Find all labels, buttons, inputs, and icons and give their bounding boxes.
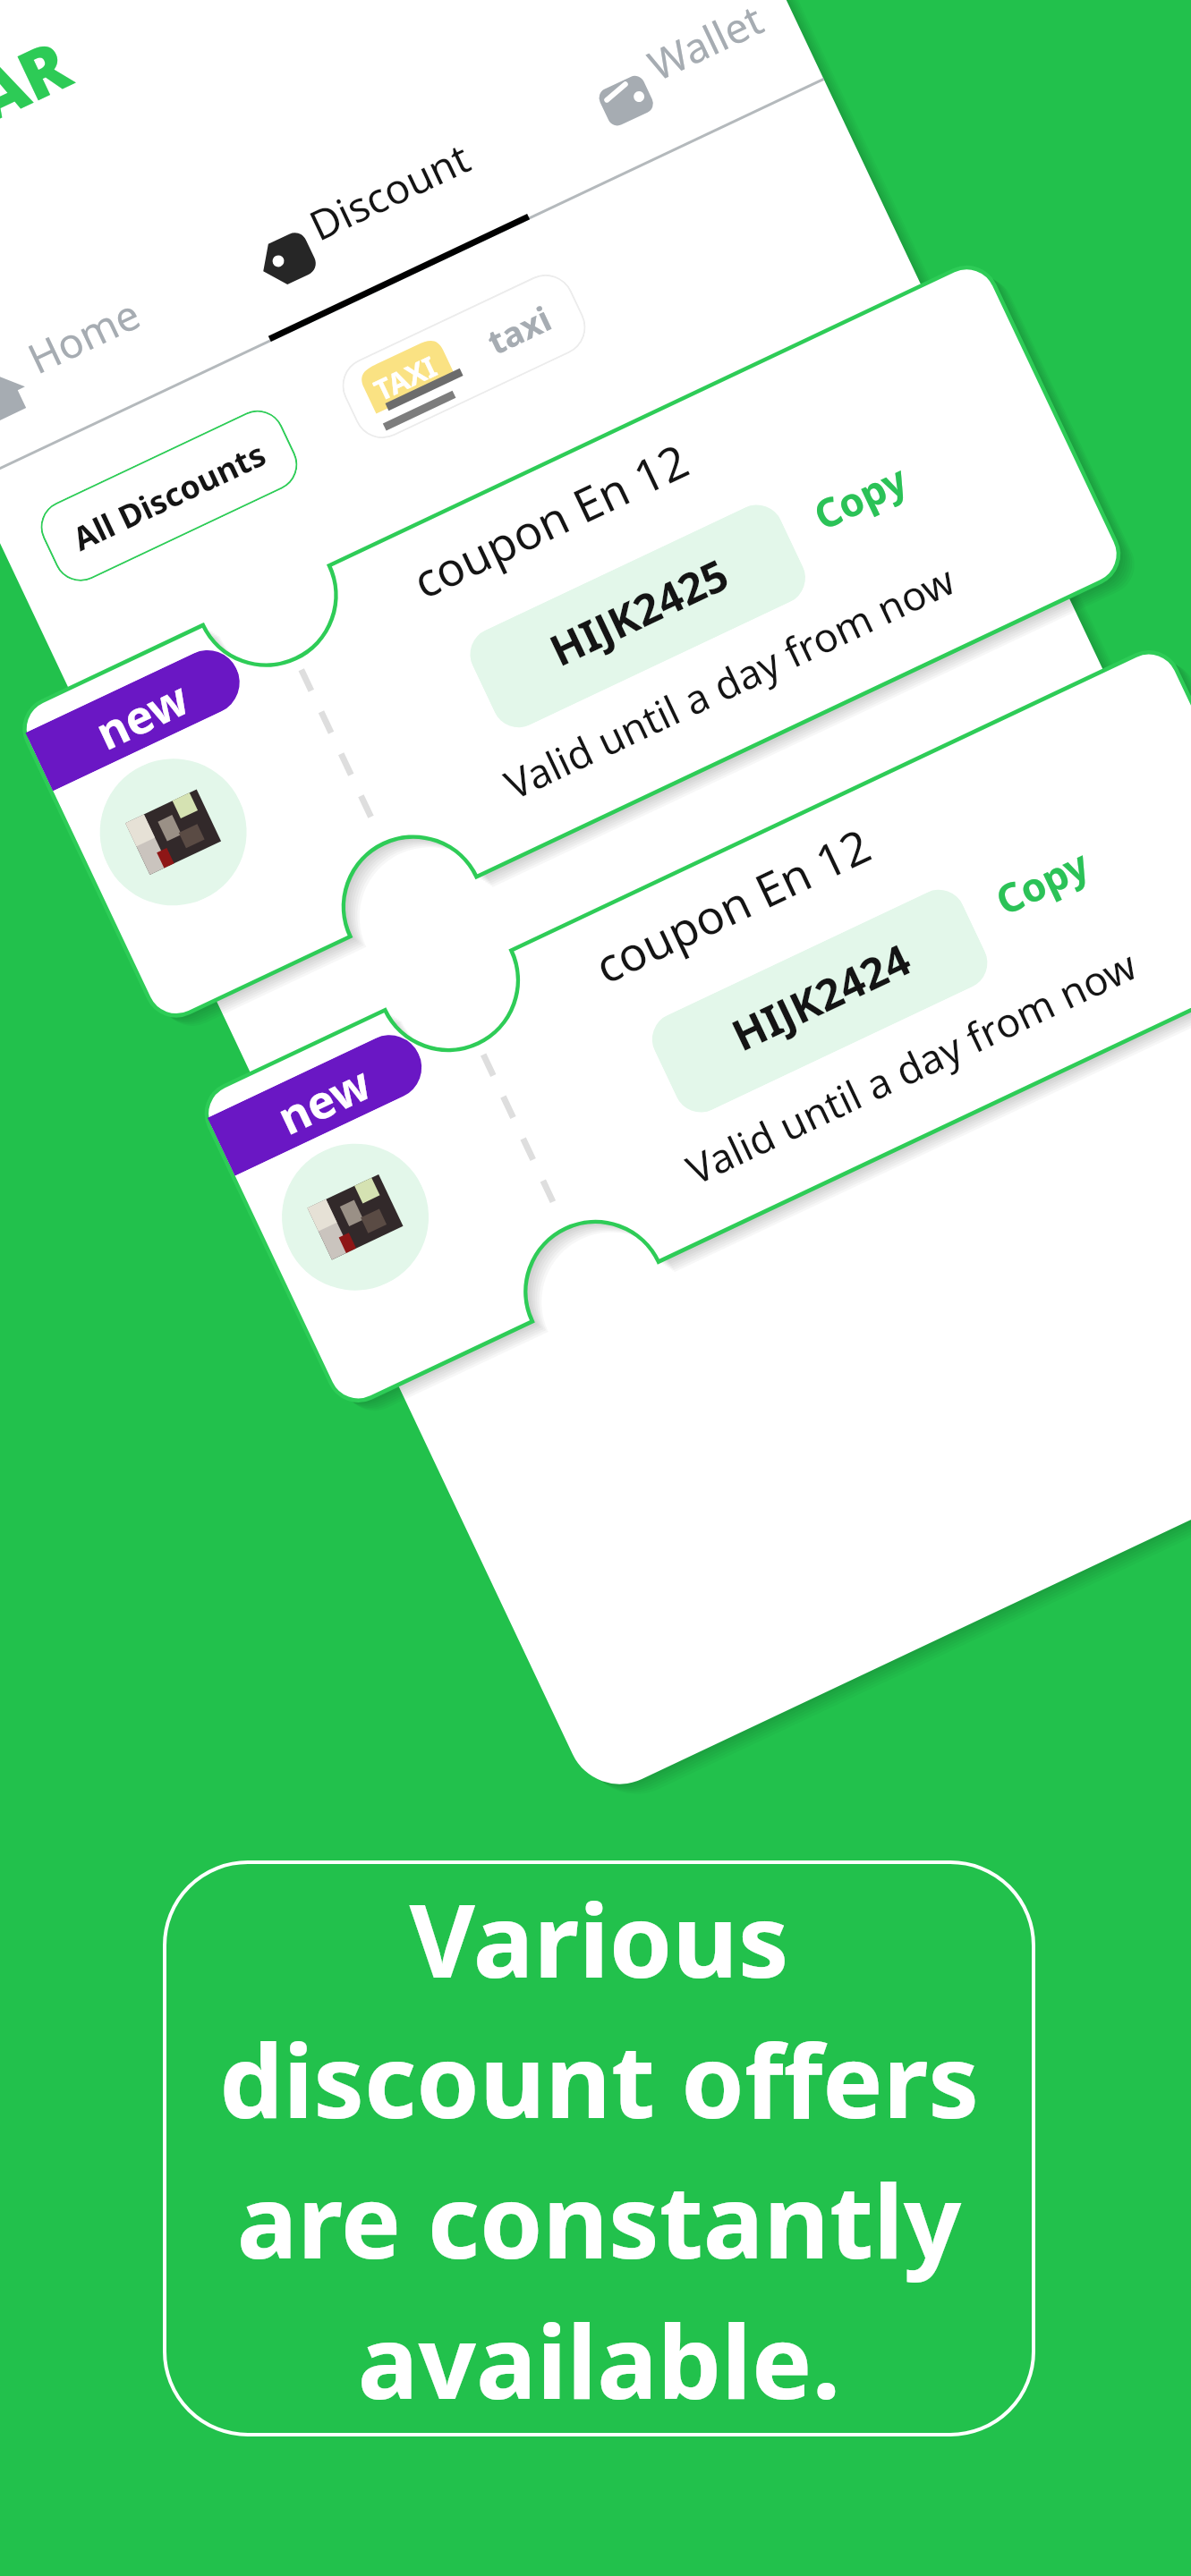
staticText: Wallet (639, 0, 772, 93)
staticText: new (85, 666, 198, 762)
staticText: Copy (805, 452, 915, 542)
button[interactable]: TAXI (333, 265, 595, 448)
button[interactable]: All Discounts (32, 401, 306, 590)
button[interactable]: Wallet (569, 0, 777, 138)
button[interactable]: Copy coupon code (803, 444, 926, 545)
staticText: Valid until a day from now (677, 937, 1145, 1196)
staticText: All Discounts (66, 432, 273, 561)
staticText: new (267, 1051, 380, 1147)
staticText: taxi (480, 294, 558, 364)
staticText: coupon En 12 (584, 813, 880, 997)
staticText: HIJK2425 (540, 545, 737, 679)
staticText: CAR (0, 17, 84, 161)
staticText: Discount (300, 129, 479, 253)
staticText: coupon En 12 (402, 428, 698, 612)
staticText: Valid until a day from now (495, 552, 963, 811)
staticText: TAXI (368, 346, 443, 410)
button[interactable]: Home (0, 265, 140, 431)
button[interactable]: Coupon HIJK2425 (15, 257, 1129, 1026)
staticText: Home (19, 285, 149, 386)
button[interactable]: Discount (230, 106, 477, 298)
staticText: HIJK2424 (722, 930, 919, 1064)
staticText: Various discount offers are constantly a… (219, 1869, 979, 2428)
button[interactable]: Coupon HIJK2424 (197, 642, 1191, 1410)
button[interactable]: Copy coupon code (985, 829, 1108, 930)
staticText: Copy (987, 837, 1097, 927)
